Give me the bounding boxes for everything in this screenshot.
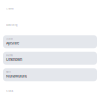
staticText: Location [6,38,13,40]
staticText: Machine [6,55,13,57]
staticText: Nunawurunu [6,74,27,78]
staticText: Name [6,71,11,73]
staticText: Monitoring [6,24,17,27]
staticText: Status [6,90,13,93]
staticText: Channel [6,7,14,10]
staticText: Unknown [6,57,22,62]
staticText: Ayrshire [6,41,19,45]
